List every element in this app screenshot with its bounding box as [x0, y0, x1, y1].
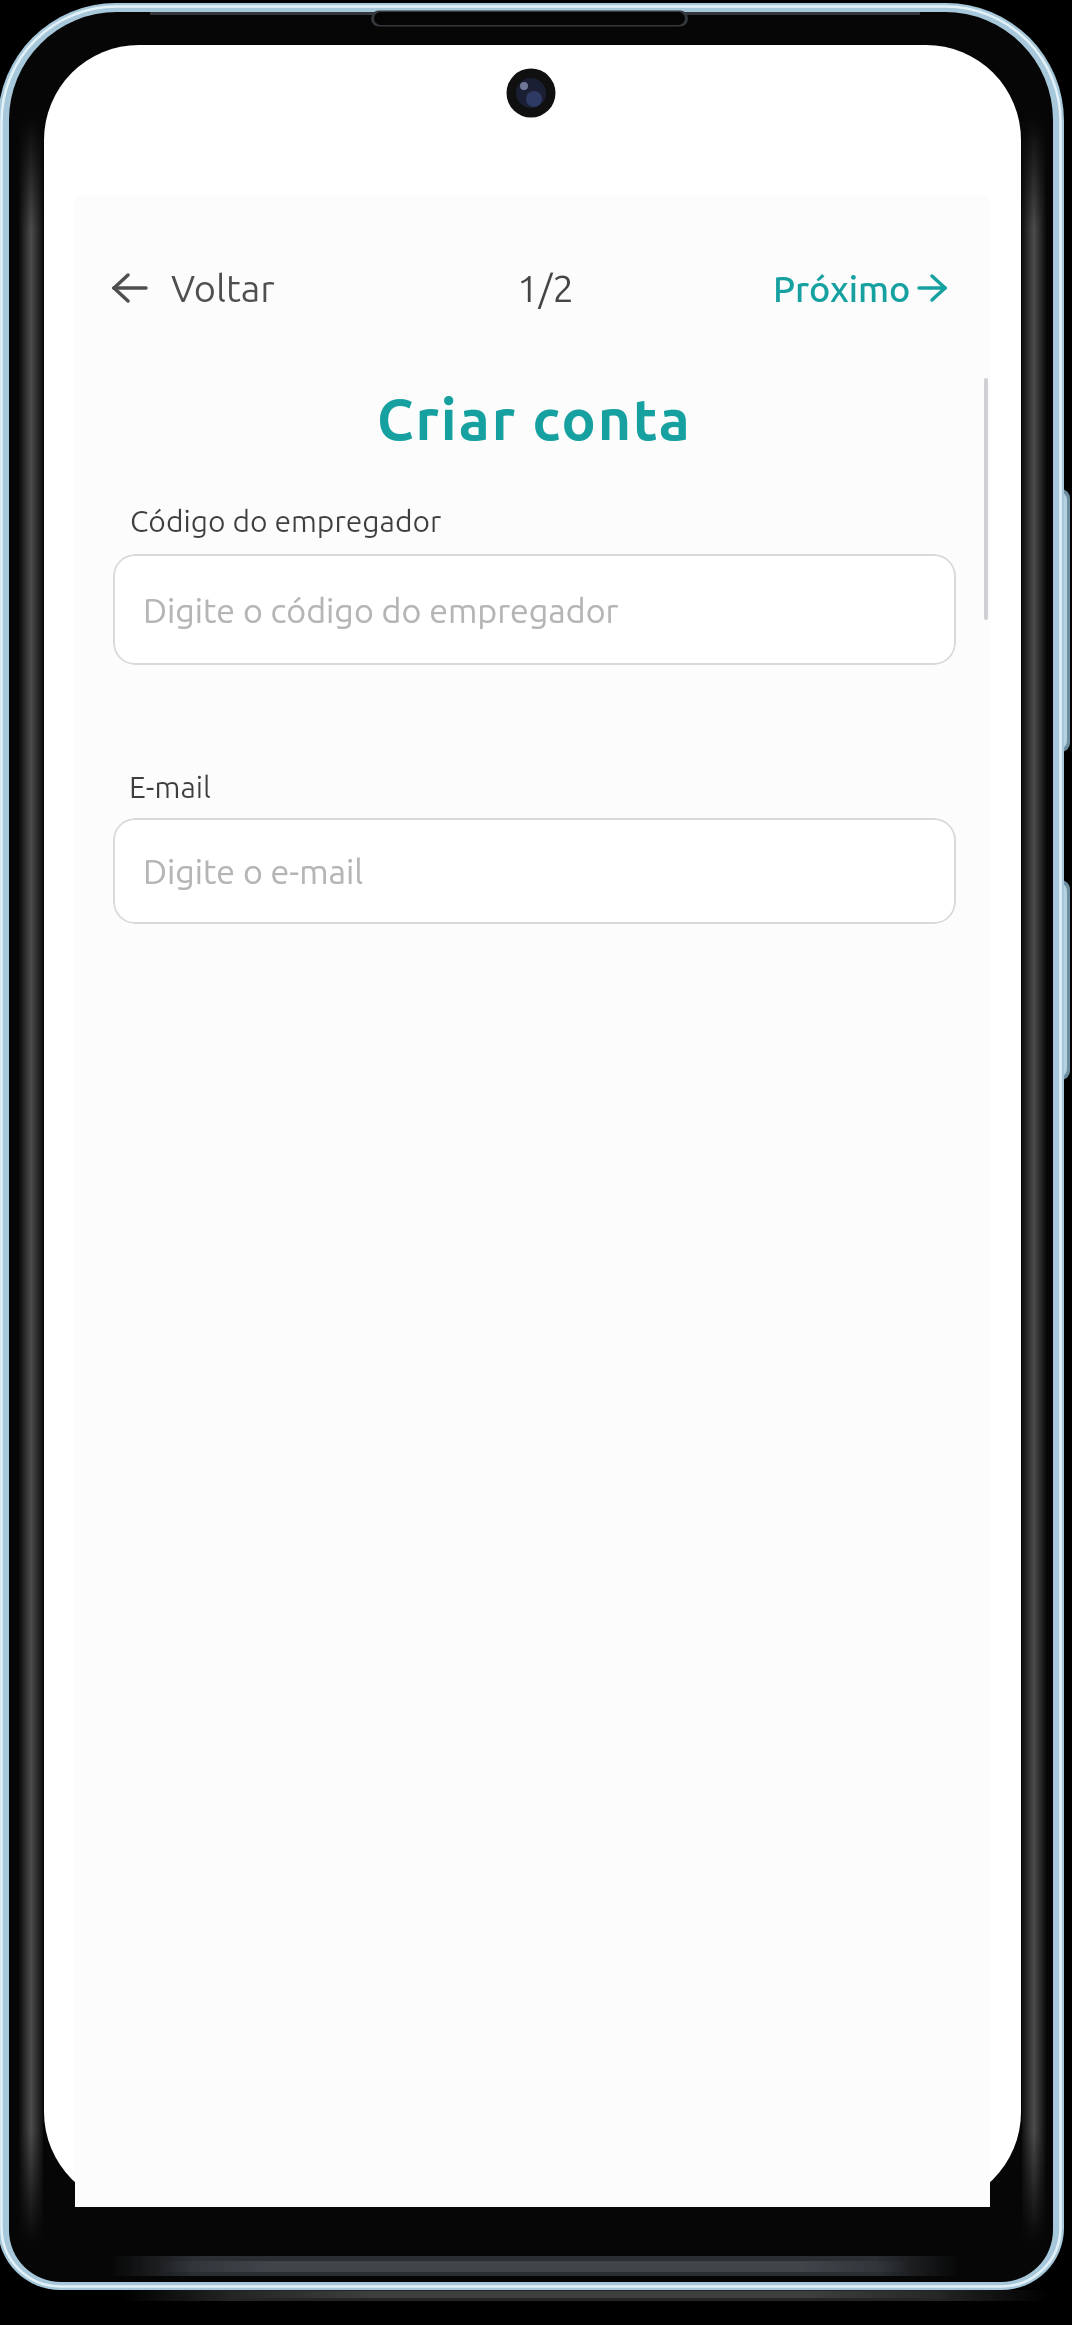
staticText: Digite o e-mail [143, 852, 364, 890]
button[interactable]: Voltar [100, 256, 290, 320]
staticText: Voltar [171, 267, 275, 310]
staticText: 1/2 [517, 267, 574, 310]
staticText: Criar conta [377, 387, 692, 451]
staticText: Digite o código do empregador [143, 591, 619, 629]
staticText: Próximo [773, 268, 911, 308]
staticText: E-mail [129, 770, 211, 804]
button[interactable]: Digite o e-mail [113, 818, 956, 924]
button[interactable]: Próximo [735, 256, 947, 320]
staticText: Código do empregador [130, 504, 442, 538]
button[interactable]: Digite o código do empregador [113, 554, 956, 665]
